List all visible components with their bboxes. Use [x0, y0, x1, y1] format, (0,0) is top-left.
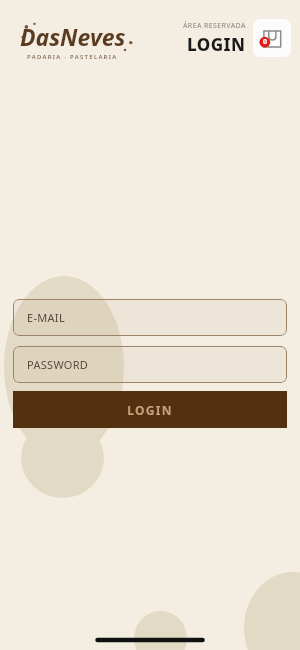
- button[interactable]: ÁREA RESERVADA: [183, 21, 246, 56]
- staticText: DasNeves: [20, 21, 126, 52]
- button[interactable]: LOGIN: [13, 391, 287, 428]
- staticText: LOGIN: [127, 402, 173, 418]
- staticText: PADARIA · PASTELARIA: [27, 53, 118, 61]
- staticText: 0: [263, 37, 268, 47]
- button[interactable]: E-MAIL: [13, 299, 287, 336]
- button[interactable]: Carrinho de compras, 0 itens: [253, 19, 291, 57]
- staticText: ÁREA RESERVADA: [183, 21, 246, 31]
- staticText: PASSWORD: [27, 357, 89, 372]
- button[interactable]: DasNeves: [20, 21, 136, 61]
- staticText: E-MAIL: [27, 310, 65, 325]
- staticText: LOGIN: [187, 33, 246, 56]
- button[interactable]: PASSWORD: [13, 346, 287, 383]
